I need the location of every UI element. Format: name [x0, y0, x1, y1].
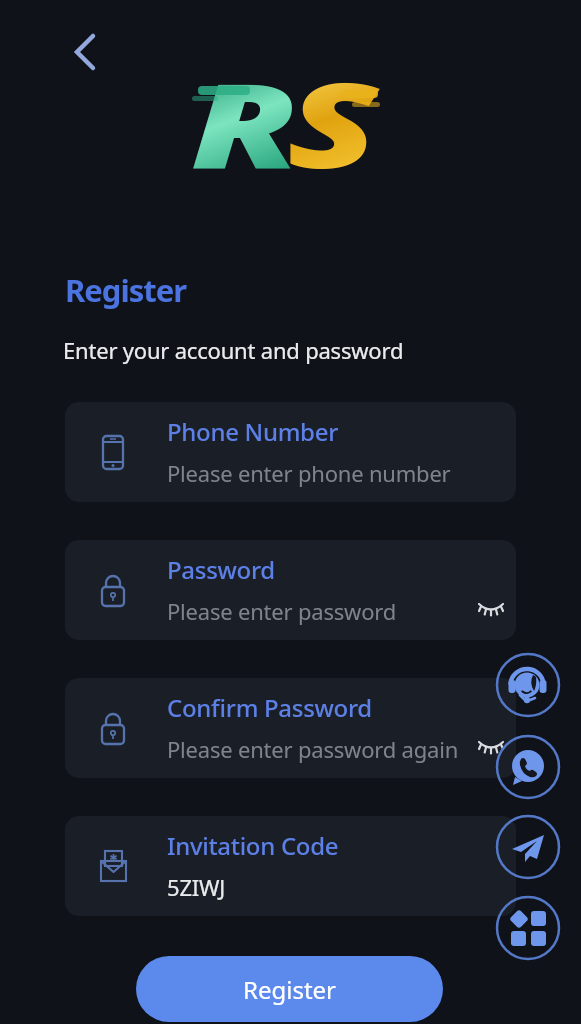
staticText: 5ZIWJ — [167, 872, 226, 902]
button[interactable]: Register — [136, 956, 443, 1022]
button[interactable] — [478, 740, 504, 758]
button[interactable] — [495, 734, 561, 800]
staticText: Enter your account and password — [63, 335, 404, 365]
button[interactable] — [495, 652, 561, 718]
staticText: Confirm Password — [167, 691, 372, 724]
button[interactable] — [495, 814, 561, 880]
staticText: R — [190, 43, 300, 202]
button[interactable]: Phone Number — [65, 402, 516, 502]
staticText: Phone Number — [167, 415, 339, 448]
button[interactable] — [478, 602, 504, 620]
staticText: Password — [167, 553, 275, 586]
button[interactable] — [495, 895, 561, 961]
staticText: Invitation Code — [167, 829, 339, 862]
button[interactable] — [62, 26, 108, 76]
button[interactable]: Invitation Code — [65, 816, 516, 916]
staticText: S — [287, 43, 379, 202]
staticText: Please enter password again — [167, 734, 459, 764]
staticText: Please enter password — [167, 596, 397, 626]
button[interactable]: Password — [65, 540, 516, 640]
staticText: Please enter phone number — [167, 458, 451, 488]
staticText: Register — [243, 973, 337, 1006]
button[interactable]: Confirm Password — [65, 678, 516, 778]
staticText: Register — [65, 269, 187, 311]
